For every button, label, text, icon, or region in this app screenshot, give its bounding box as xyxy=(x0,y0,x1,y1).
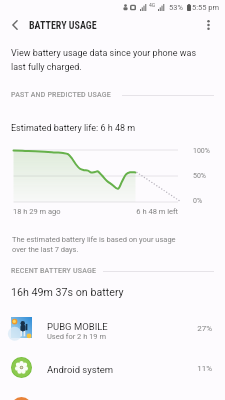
button[interactable]: PUBG MOBILE xyxy=(0,309,225,349)
button[interactable]: Android system xyxy=(0,349,225,389)
staticText: Estimated battery life: 6 h 48 m xyxy=(11,123,136,134)
staticText: PUBG MOBILE xyxy=(47,321,108,332)
button[interactable]: Navigate up xyxy=(5,15,25,35)
staticText: 6 h 48 m left xyxy=(118,207,178,216)
staticText: 0% xyxy=(193,197,203,205)
staticText: 16h 49m 37s on battery xyxy=(11,286,124,299)
staticText: The estimated battery life is based on y… xyxy=(12,235,176,253)
staticText: Android system xyxy=(47,364,114,375)
staticText: 100% xyxy=(193,147,210,155)
staticText: View battery usage data since your phone… xyxy=(11,48,197,72)
button[interactable]: Chrome xyxy=(0,389,225,400)
staticText: 4G xyxy=(149,2,156,8)
staticText: BATTERY USAGE xyxy=(29,20,97,32)
button[interactable]: More options xyxy=(198,15,218,35)
staticText: Used for 2 h 19 m xyxy=(47,332,107,341)
staticText: 27% xyxy=(152,324,212,333)
staticText: PAST AND PREDICTED USAGE xyxy=(11,91,111,99)
staticText: 18 h 29 m ago xyxy=(13,207,61,216)
staticText: RECENT BATTERY USAGE xyxy=(11,267,97,275)
staticText: 11% xyxy=(152,364,212,373)
staticText: 50% xyxy=(193,172,206,180)
staticText: 5:55 pm xyxy=(192,3,220,12)
staticText: 53% xyxy=(169,3,183,12)
